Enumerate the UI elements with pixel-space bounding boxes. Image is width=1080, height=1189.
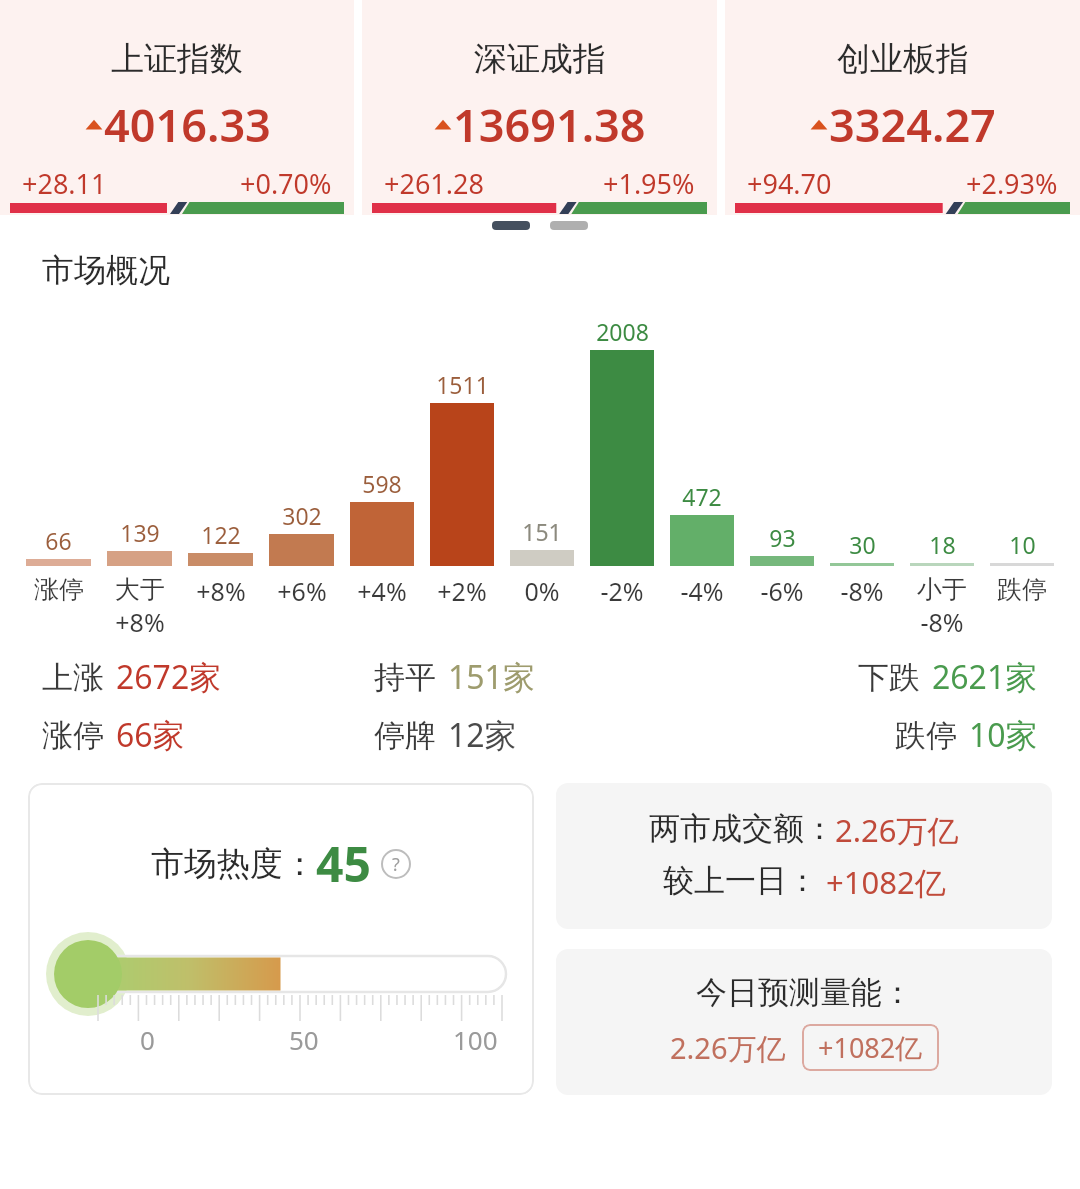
staticText: +94.70 — [747, 165, 832, 202]
button[interactable]: 30 — [822, 529, 902, 566]
button[interactable]: 两市成交额： — [556, 783, 1052, 929]
staticText: 302 — [282, 500, 322, 531]
button[interactable]: 1511 — [422, 369, 502, 566]
staticText: 3324.27 — [829, 94, 996, 155]
staticText: +8% — [196, 574, 246, 608]
staticText: 跌停 — [895, 716, 957, 755]
staticText: 创业板指 — [837, 38, 969, 80]
button[interactable]: 66 — [18, 525, 99, 566]
staticText: -4% — [680, 574, 724, 608]
staticText: +6% — [277, 574, 327, 608]
staticText: 4016.33 — [104, 94, 271, 155]
button[interactable]: 深证成指 — [362, 0, 717, 215]
staticText: 深证成指 — [474, 38, 606, 80]
staticText: -2% — [600, 574, 644, 608]
staticText: 13691.38 — [453, 94, 646, 155]
button[interactable]: 598 — [342, 468, 422, 566]
staticText: +2% — [437, 574, 487, 608]
staticText: 0% — [524, 574, 560, 608]
staticText: 2672家 — [116, 655, 222, 699]
staticText: -6% — [760, 574, 804, 608]
staticText: 66 — [45, 525, 72, 556]
button[interactable]: Page 1 — [492, 221, 530, 230]
button[interactable]: 创业板指 — [725, 0, 1080, 215]
staticText: ? — [392, 852, 400, 877]
button[interactable]: 2008 — [582, 316, 662, 566]
button[interactable]: 今日预测量能： — [556, 949, 1052, 1095]
staticText: 涨停 — [34, 574, 84, 605]
button[interactable]: 472 — [662, 481, 742, 566]
button[interactable]: 18 — [902, 529, 982, 566]
staticText: +28.11 — [22, 165, 107, 202]
staticText: 0 — [140, 1022, 155, 1057]
staticText: 市场概况 — [42, 250, 170, 290]
staticText: 10家 — [969, 713, 1038, 757]
button[interactable]: 302 — [261, 500, 342, 566]
staticText: 10 — [1009, 529, 1036, 560]
staticText: 2621家 — [932, 655, 1038, 699]
staticText: -8% — [920, 605, 964, 639]
staticText: 2.26万亿 — [670, 1028, 786, 1068]
staticText: 今日预测量能： — [696, 973, 913, 1012]
staticText: 18 — [929, 529, 956, 560]
staticText: 1511 — [436, 369, 489, 400]
staticText: 两市成交额： — [649, 809, 835, 848]
staticText: 66家 — [116, 713, 185, 757]
staticText: 50 — [289, 1022, 319, 1057]
button[interactable]: 市场热度： — [28, 783, 534, 1095]
staticText: 小于 — [917, 574, 967, 605]
staticText: 100 — [453, 1022, 498, 1057]
staticText: 下跌 — [858, 658, 920, 697]
staticText: +0.70% — [240, 165, 332, 202]
button[interactable]: 151 — [502, 516, 582, 566]
button[interactable]: 10 — [982, 529, 1062, 566]
staticText: 151 — [522, 516, 562, 547]
staticText: 2008 — [596, 316, 649, 347]
button[interactable]: Help — [381, 849, 411, 879]
button[interactable]: Page 2 — [550, 221, 588, 230]
staticText: 12家 — [448, 713, 517, 757]
staticText: 市场热度： — [151, 843, 316, 885]
button[interactable]: 上证指数 — [0, 0, 354, 215]
staticText: 上涨 — [42, 658, 104, 697]
staticText: 大于 — [115, 574, 165, 605]
staticText: 151家 — [448, 655, 535, 699]
staticText: +1082亿 — [818, 861, 946, 903]
staticText: +4% — [357, 574, 407, 608]
staticText: +1082亿 — [818, 1029, 923, 1066]
staticText: +261.28 — [384, 165, 484, 202]
staticText: 139 — [120, 517, 160, 548]
staticText: 45 — [316, 831, 371, 896]
staticText: -8% — [840, 574, 884, 608]
staticText: +1.95% — [603, 165, 695, 202]
staticText: 涨停 — [42, 716, 104, 755]
staticText: 472 — [682, 481, 722, 512]
staticText: +8% — [115, 605, 165, 639]
button[interactable]: 139 — [99, 517, 180, 566]
staticText: 122 — [201, 519, 241, 550]
staticText: 停牌 — [374, 716, 436, 755]
staticText: 93 — [769, 522, 796, 553]
staticText: +2.93% — [966, 165, 1058, 202]
staticText: 598 — [362, 468, 402, 499]
staticText: 持平 — [374, 658, 436, 697]
staticText: 30 — [849, 529, 876, 560]
button[interactable]: 93 — [742, 522, 822, 566]
staticText: 较上一日： — [663, 861, 818, 900]
staticText: 上证指数 — [111, 38, 243, 80]
button[interactable]: 122 — [180, 519, 261, 566]
staticText: 2.26万亿 — [835, 809, 959, 851]
staticText: 跌停 — [997, 574, 1047, 605]
